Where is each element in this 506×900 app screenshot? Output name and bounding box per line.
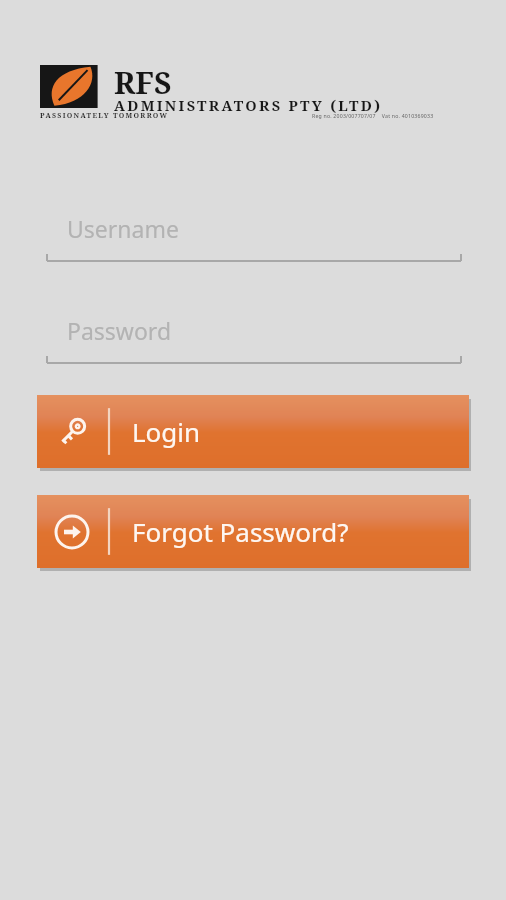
staticText: PASSIONATELY TOMORROW <box>40 111 169 121</box>
staticText: Password <box>67 315 172 346</box>
staticText: RFS <box>114 62 172 103</box>
other: Login key <box>37 395 107 468</box>
button[interactable]: Forgot password arrow <box>37 495 469 568</box>
other: Forgot password arrow <box>37 495 107 568</box>
staticText: Username <box>67 213 179 244</box>
button[interactable]: Password <box>45 307 463 365</box>
staticText: Reg no. 2003/007707/07 Vat no. 401036903… <box>312 112 434 119</box>
button[interactable]: Username <box>45 205 463 263</box>
button[interactable]: Login key <box>37 395 469 468</box>
staticText: Forgot Password? <box>132 514 349 549</box>
staticText: Login <box>132 414 201 449</box>
staticText: ADMINISTRATORS PTY (LTD) <box>114 95 383 115</box>
